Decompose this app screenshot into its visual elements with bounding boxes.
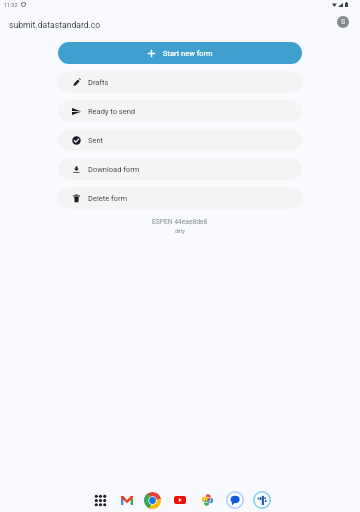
staticText: Download form (88, 165, 140, 174)
staticText: Start new form (163, 49, 213, 58)
staticText: Sent (88, 136, 104, 145)
button[interactable]: YouTube (169, 489, 191, 511)
button[interactable]: Drafts (58, 71, 302, 93)
staticText: Ready to send (88, 107, 136, 116)
staticText: S (341, 18, 346, 26)
button[interactable]: Gmail (116, 489, 138, 511)
staticText: 11:32 (4, 2, 18, 8)
button[interactable]: Start new form (58, 42, 302, 64)
staticText: submit.datastandard.co (9, 20, 101, 30)
button[interactable]: Sent (58, 129, 302, 151)
button[interactable]: Chrome (141, 489, 163, 511)
staticText: Drafts (88, 78, 109, 87)
button[interactable]: Account (337, 16, 349, 28)
button[interactable]: Ready to send (58, 100, 302, 122)
staticText: dirty (175, 228, 185, 234)
staticText: ESPEN 44eae8de8 (152, 218, 208, 226)
button[interactable]: Assistant (251, 489, 273, 511)
button[interactable]: Download form (58, 158, 302, 180)
staticText: Delete form (88, 194, 127, 203)
button[interactable]: Delete form (58, 187, 302, 209)
button[interactable]: Photos (196, 489, 218, 511)
button[interactable]: All apps (89, 489, 111, 511)
button[interactable]: Messages (224, 489, 246, 511)
